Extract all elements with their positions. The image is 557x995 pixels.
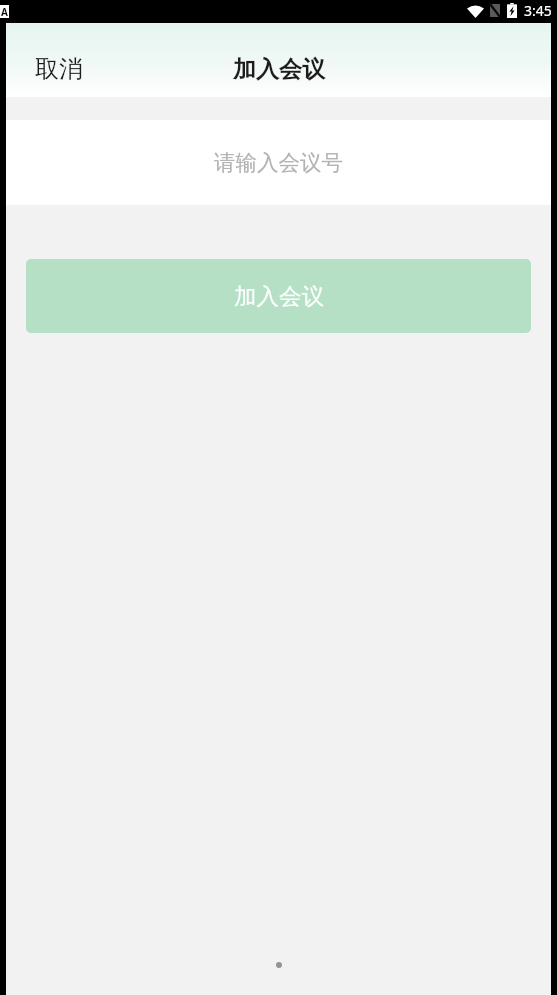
other: Battery charging	[507, 3, 517, 18]
staticText: A	[1, 5, 8, 18]
button[interactable]: 加入会议	[26, 259, 531, 333]
other: Wi-Fi	[467, 4, 484, 18]
staticText: 取消	[35, 54, 83, 84]
other: No SIM card	[490, 4, 500, 17]
staticText: 加入会议	[233, 55, 325, 84]
staticText: 3:45	[524, 1, 552, 20]
button[interactable]: 请输入会议号	[6, 120, 551, 205]
staticText: 请输入会议号	[214, 149, 343, 176]
staticText: 加入会议	[234, 282, 324, 310]
button[interactable]: 取消	[6, 23, 107, 97]
